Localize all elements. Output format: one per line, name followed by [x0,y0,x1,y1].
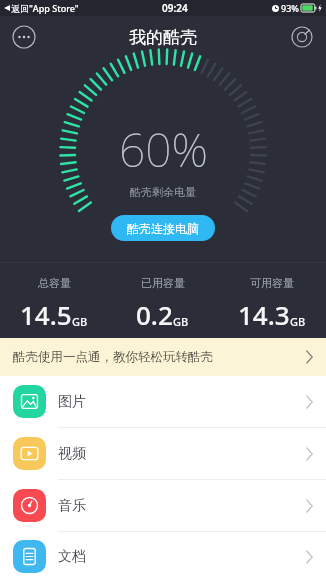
staticText: GB [72,314,88,329]
staticText: GB [290,314,306,329]
staticText: 60% [119,118,208,181]
staticText: 文档 [58,548,86,566]
staticText: GB [173,314,189,329]
staticText: 已用容量 [141,276,185,290]
staticText: 14.3 [238,297,290,332]
staticText: 音乐 [58,497,86,515]
staticText: 酷壳使用一点通，教你轻松玩转酷壳 [13,349,213,365]
staticText: 09:24 [162,1,188,15]
staticText: 我的酷壳 [129,27,197,48]
staticText: 14.5 [20,297,72,332]
button[interactable]: 图片 [0,376,326,427]
staticText: 视频 [58,445,86,463]
staticText: 0.2 [136,297,173,332]
staticText: 可用容量 [250,276,294,290]
staticText: 93% [281,2,299,14]
staticText: 酷壳连接电脑 [127,221,199,236]
staticText: 图片 [58,393,86,411]
button[interactable]: 视频 [0,428,326,479]
button[interactable]: 音乐 [0,480,326,531]
button[interactable]: 酷壳使用一点通，教你轻松玩转酷壳 [0,338,326,376]
button[interactable]: 酷壳连接电脑 [111,215,215,241]
button[interactable]: 文档 [0,532,326,581]
staticText: 总容量 [38,276,71,290]
button[interactable]: Device status [288,23,316,51]
staticText: 酷壳剩余电量 [130,185,196,199]
button[interactable]: More options [10,23,38,51]
staticText: 返回"App Store" [11,2,79,14]
